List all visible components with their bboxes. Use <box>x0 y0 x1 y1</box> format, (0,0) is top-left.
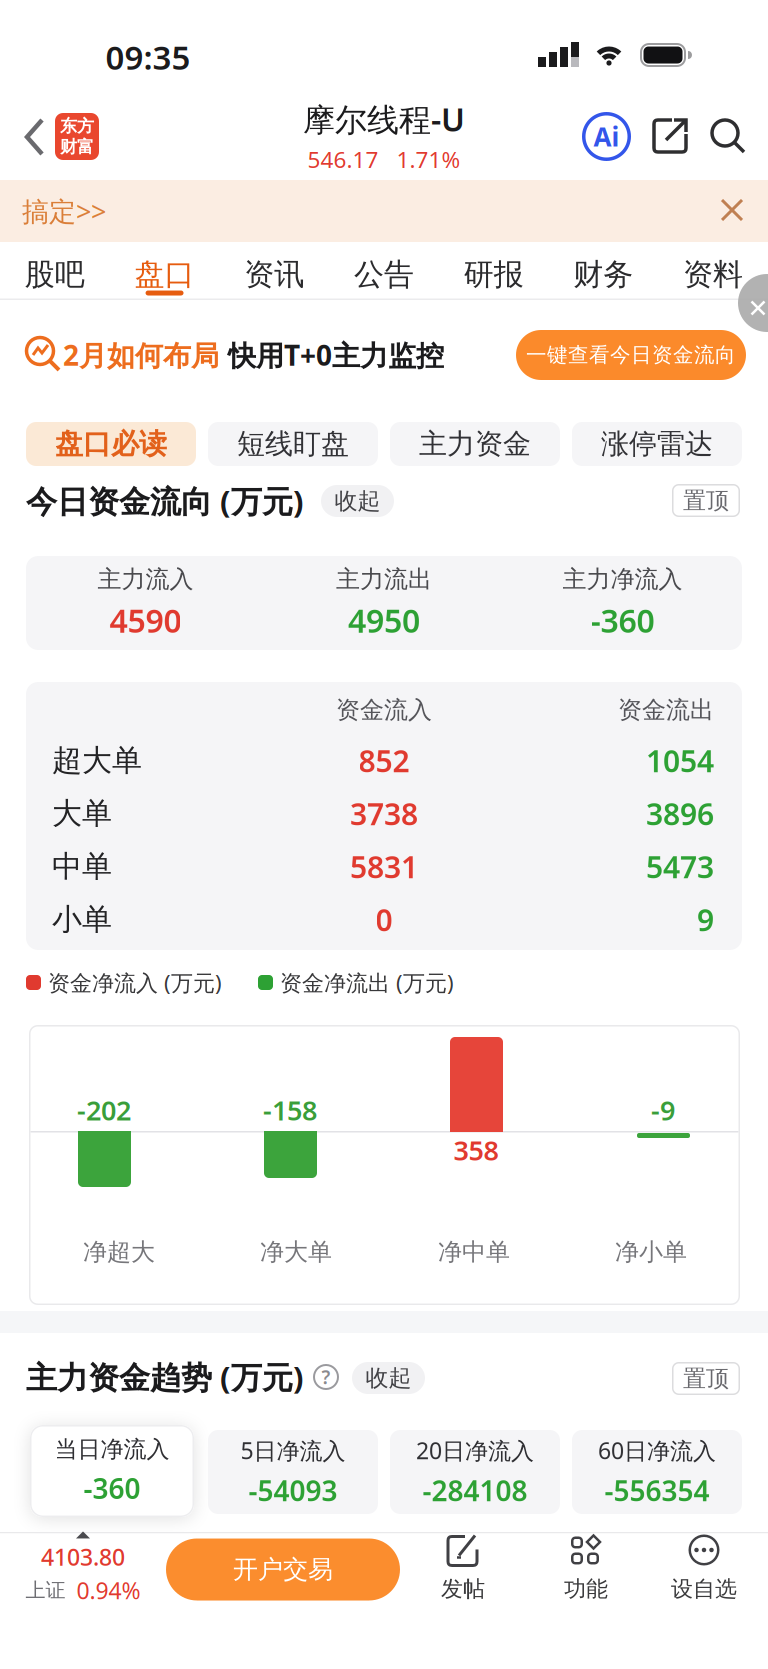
staticText: 发帖 <box>441 1575 485 1602</box>
staticText: 60日净流入 <box>598 1435 716 1466</box>
staticText: 主力流入 <box>97 564 193 594</box>
button[interactable]: 开户交易 <box>166 1538 400 1600</box>
button[interactable]: 收起 <box>321 485 394 517</box>
staticText: 20日净流入 <box>416 1435 534 1466</box>
button[interactable]: 资料 <box>658 242 768 298</box>
staticText: 4103.80 <box>41 1541 125 1572</box>
button[interactable]: 股吧 <box>0 242 110 298</box>
button[interactable]: 当日净流入 <box>30 1425 194 1517</box>
staticText: 财务 <box>573 256 633 293</box>
staticText: 资料 <box>683 256 743 293</box>
staticText: 大单 <box>52 795 112 832</box>
staticText: 0 <box>375 900 392 939</box>
staticText: 09:35 <box>105 35 190 79</box>
staticText: 资金净流入 (万元) <box>48 968 222 997</box>
staticText: 置顶 <box>683 486 729 515</box>
staticText: 358 <box>453 1132 498 1168</box>
staticText: 资讯 <box>244 256 304 293</box>
button[interactable]: 置顶 <box>672 1362 740 1395</box>
button[interactable]: Ai <box>582 112 631 161</box>
staticText: 主力净流入 <box>563 564 683 594</box>
staticText: -284108 <box>422 1472 527 1509</box>
staticText: 5473 <box>646 847 714 886</box>
staticText: 主力流出 <box>336 564 432 594</box>
button[interactable]: 资讯 <box>219 242 329 298</box>
staticText: 摩尔线程-U <box>303 98 465 140</box>
button[interactable]: 5日净流入 <box>208 1430 378 1514</box>
staticText: 中单 <box>52 848 112 885</box>
staticText: 资金流出 <box>618 695 714 725</box>
staticText: 置顶 <box>683 1364 729 1393</box>
staticText: 资金净流出 (万元) <box>280 968 454 997</box>
button[interactable]: 置顶 <box>672 484 740 517</box>
button[interactable]: 公告 <box>329 242 439 298</box>
staticText: 4950 <box>348 599 420 641</box>
staticText: 功能 <box>564 1575 608 1602</box>
button[interactable]: 20日净流入 <box>390 1430 560 1514</box>
button[interactable]: 涨停雷达 <box>572 422 742 466</box>
staticText: 当日净流入 <box>54 1435 169 1464</box>
staticText: 设自选 <box>671 1575 737 1602</box>
staticText: 上证 <box>25 1578 65 1603</box>
button[interactable]: 财务 <box>548 242 658 298</box>
staticText: 净小单 <box>615 1237 687 1267</box>
staticText: -54093 <box>248 1472 337 1509</box>
staticText: 短线盯盘 <box>237 427 349 461</box>
button[interactable] <box>710 118 748 154</box>
staticText: 开户交易 <box>233 1554 333 1585</box>
staticText: 一键查看今日资金流向 <box>526 342 736 368</box>
button[interactable]: 发帖 <box>416 1535 510 1601</box>
staticText: 收起 <box>365 1364 411 1392</box>
button[interactable]: 60日净流入 <box>572 1430 742 1514</box>
staticText: 主力资金 <box>419 427 531 461</box>
staticText: ? <box>321 1364 330 1390</box>
staticText: 涨停雷达 <box>601 427 713 461</box>
staticText: 5831 <box>350 847 418 886</box>
staticText: 收起 <box>334 487 380 515</box>
button[interactable]: 主力资金 <box>390 422 560 466</box>
staticText: 852 <box>358 741 409 780</box>
staticText: 财富 <box>60 136 94 157</box>
staticText: 546.17 1.71% <box>307 144 460 174</box>
staticText: 资金流入 <box>336 695 432 725</box>
button[interactable] <box>25 118 45 156</box>
staticText: 0.94% <box>76 1575 140 1605</box>
staticText: 公告 <box>354 256 414 293</box>
staticText: 今日资金流向 (万元) <box>26 480 304 522</box>
staticText: -360 <box>83 1469 140 1507</box>
button[interactable]: 设自选 <box>657 1535 751 1601</box>
staticText: 搞定>> <box>22 193 106 229</box>
staticText: Ai <box>593 119 619 154</box>
button[interactable] <box>738 274 768 332</box>
button[interactable] <box>722 200 742 220</box>
staticText: -360 <box>591 599 655 641</box>
staticText: -9 <box>651 1092 675 1128</box>
button[interactable]: 功能 <box>539 1535 633 1601</box>
button[interactable]: 盘口 <box>110 242 219 298</box>
button[interactable] <box>652 118 690 154</box>
staticText: 研报 <box>464 256 524 293</box>
staticText: 主力资金趋势 (万元) <box>26 1356 304 1398</box>
button[interactable]: 收起 <box>352 1362 425 1394</box>
staticText: -202 <box>77 1092 131 1128</box>
staticText: 净中单 <box>438 1237 510 1267</box>
staticText: 5日净流入 <box>240 1435 345 1466</box>
button[interactable]: 一键查看今日资金流向 <box>516 330 746 380</box>
staticText: 超大单 <box>52 742 142 779</box>
button[interactable]: 东方 <box>55 113 99 160</box>
staticText: 净大单 <box>260 1237 332 1267</box>
staticText: 2月如何布局 <box>63 336 219 374</box>
button[interactable]: 短线盯盘 <box>208 422 378 466</box>
button[interactable]: 4103.80 <box>8 1533 158 1603</box>
staticText: 快用T+0主力监控 <box>228 336 444 374</box>
staticText: -556354 <box>604 1472 709 1509</box>
button[interactable]: 盘口必读 <box>26 422 196 466</box>
staticText: 盘口 <box>135 256 195 293</box>
button[interactable]: 研报 <box>439 242 548 298</box>
staticText: 盘口必读 <box>55 427 167 461</box>
staticText: 净超大 <box>83 1237 155 1267</box>
staticText: 东方 <box>60 116 94 136</box>
staticText: 3738 <box>350 794 418 833</box>
staticText: 小单 <box>52 901 112 938</box>
staticText: 1054 <box>646 741 714 780</box>
